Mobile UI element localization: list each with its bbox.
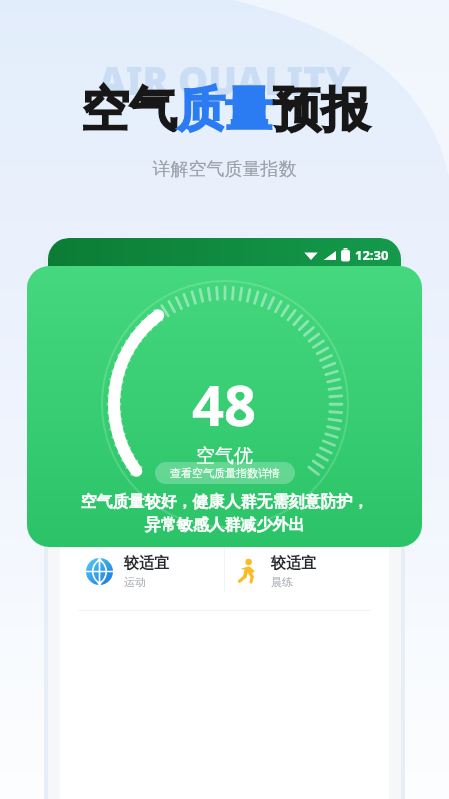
button[interactable]: 3 <box>170 415 279 482</box>
staticText: 较适宜 <box>124 554 169 573</box>
staticText: 48 <box>192 366 257 442</box>
staticText: 二氧化硫 <box>313 389 357 403</box>
staticText: 空气 <box>81 80 177 140</box>
staticText: 异常敏感人群减少外出 <box>27 515 422 535</box>
staticText: 查看空气质量指数详情 <box>170 466 280 480</box>
other: 运动 <box>86 558 113 585</box>
staticText: 12:30 <box>355 246 389 264</box>
button[interactable]: 13 <box>280 347 389 414</box>
button[interactable]: 查看空气质量指数详情 <box>155 462 295 484</box>
staticText: 13 <box>324 358 346 384</box>
staticText: 预报 <box>273 80 369 140</box>
staticText: 细颗粒物 <box>93 389 137 403</box>
staticText: 50 <box>104 358 126 384</box>
staticText: 40 <box>104 426 126 452</box>
staticText: 空气质量较好，健康人群无需刻意防护， <box>27 492 422 512</box>
staticText: 空气优 <box>196 444 253 468</box>
staticText: AIR QUALITY <box>0 54 449 106</box>
button[interactable]: 运动 <box>78 548 224 594</box>
staticText: 详解空气质量指数 <box>0 158 449 181</box>
staticText: 较适宜 <box>271 554 316 573</box>
button[interactable]: 40 <box>60 415 169 482</box>
staticText: 粗颗粒物 <box>203 389 247 403</box>
button[interactable]: 晨练 <box>225 548 371 594</box>
staticText: 二氧化碳 <box>93 457 137 471</box>
button[interactable]: 50 <box>60 347 169 414</box>
button[interactable]: 100 <box>170 347 279 414</box>
staticText: 臭氧 <box>324 457 346 471</box>
staticText: 运动 <box>124 575 146 589</box>
staticText: 101 <box>318 426 351 452</box>
other: 晨练 <box>233 558 260 585</box>
button[interactable]: 101 <box>280 415 389 482</box>
button[interactable]: 48 <box>27 266 422 547</box>
staticText: 一氧化碳 <box>203 457 247 471</box>
staticText: 晨练 <box>271 575 293 589</box>
staticText: 3 <box>219 426 230 452</box>
staticText: 质量 <box>177 80 273 140</box>
